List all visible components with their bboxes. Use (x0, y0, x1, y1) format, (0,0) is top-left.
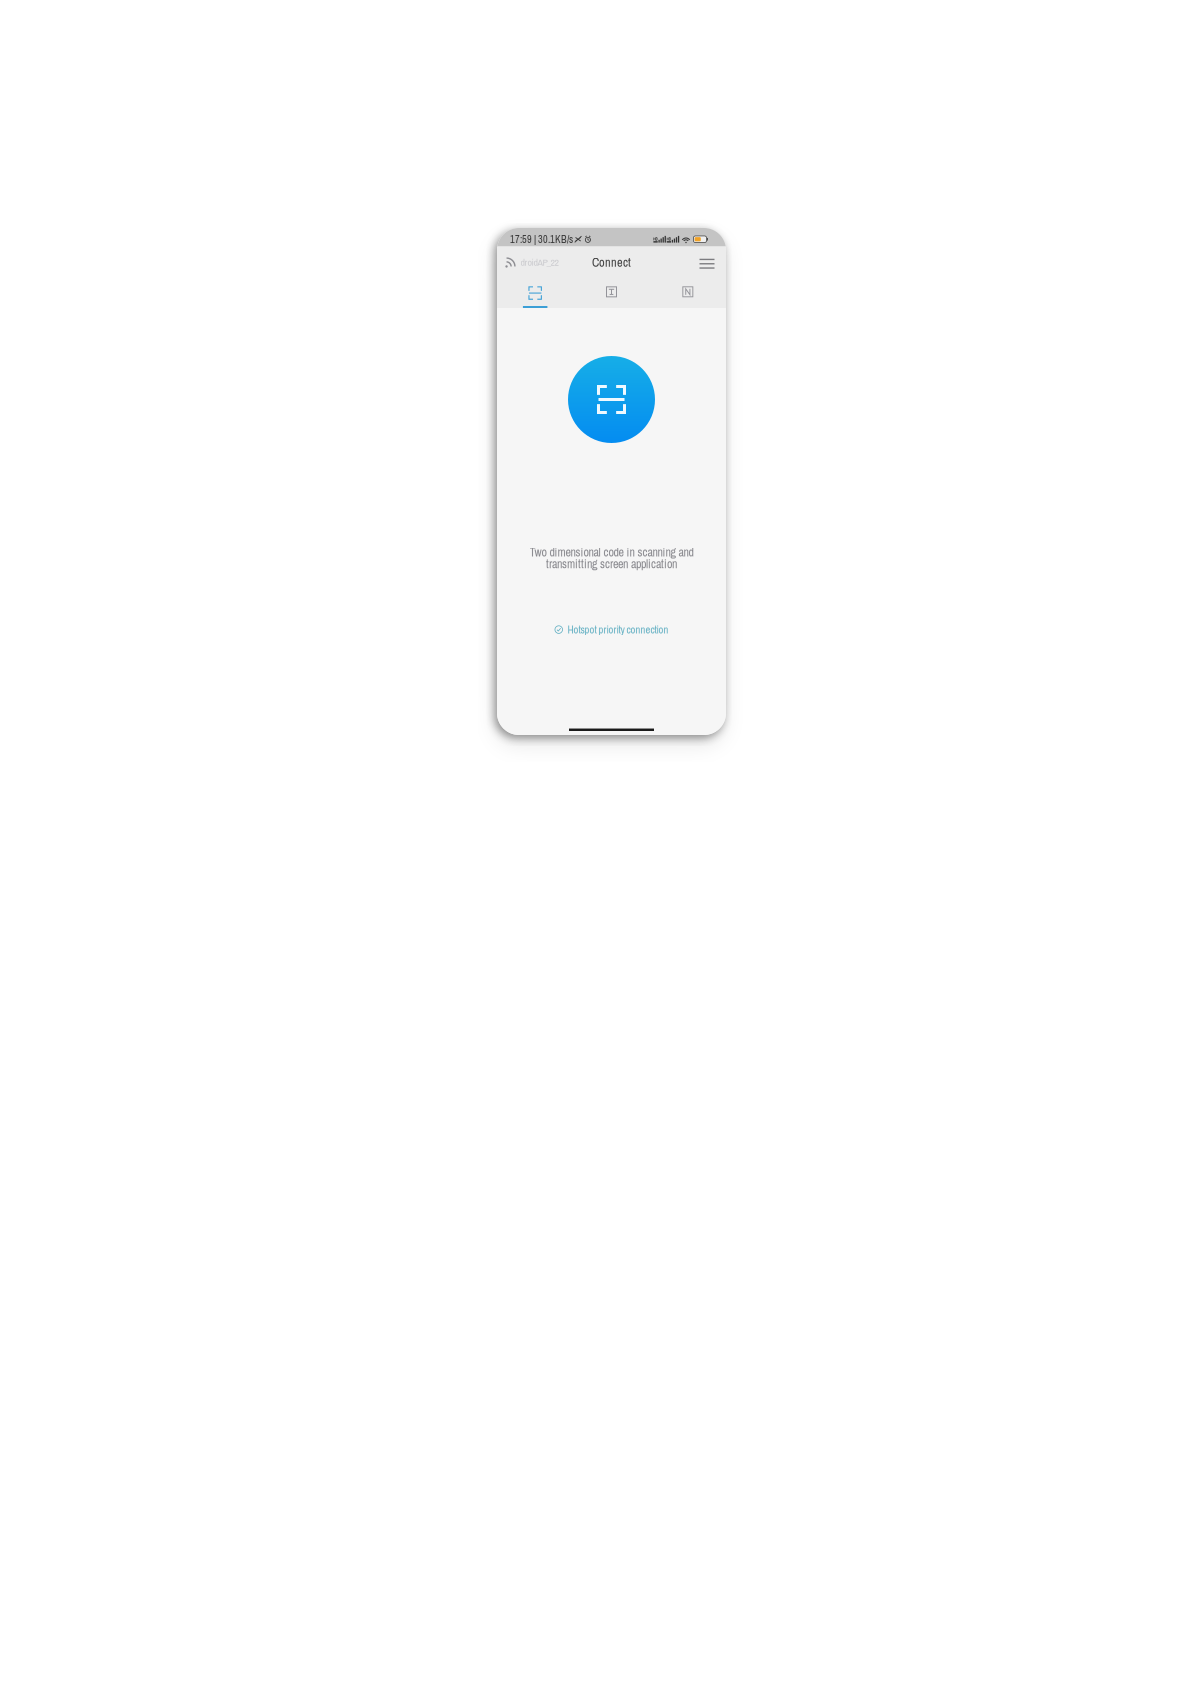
staticText: droidAP_22 (520, 256, 558, 269)
staticText: Connect (592, 254, 631, 270)
staticText: Two dimensional code in scanning and (529, 544, 693, 560)
button[interactable]: Scan QR code (497, 278, 573, 308)
button[interactable]: droidAP_22 (504, 249, 564, 276)
staticText: transmitting screen application (546, 556, 677, 572)
button[interactable]: Enter code manually (573, 278, 650, 308)
staticText: 17:59 | 30.1KB/s (510, 232, 573, 246)
button[interactable]: NFC (650, 278, 726, 308)
button[interactable]: Menu (697, 248, 715, 276)
staticText: Hotspot priority connection (567, 622, 668, 637)
button[interactable]: Scan QR code (568, 356, 655, 443)
button[interactable]: Hotspot priority connection (548, 618, 674, 641)
